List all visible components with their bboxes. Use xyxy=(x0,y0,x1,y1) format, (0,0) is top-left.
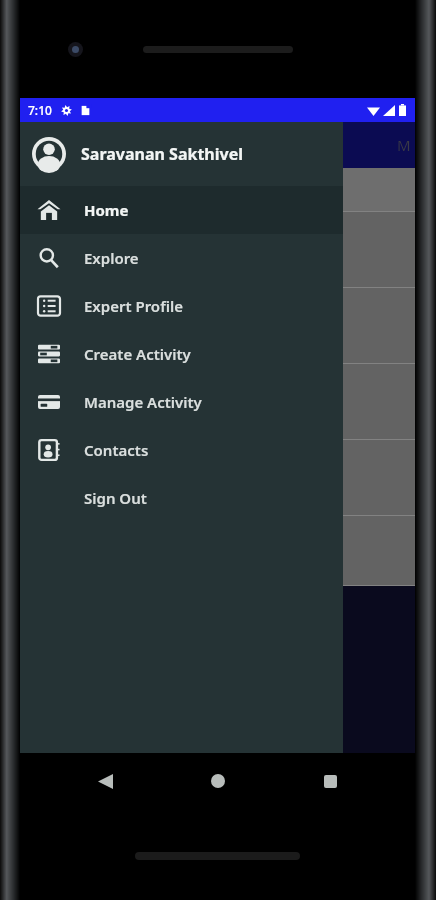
staticText: Create Activity xyxy=(84,344,191,364)
staticText: Expert Profile xyxy=(84,296,183,316)
button[interactable]: Home xyxy=(20,186,343,234)
staticText: Contacts xyxy=(84,440,149,460)
staticText: More Info… xyxy=(21,190,87,206)
button[interactable]: Sign Out xyxy=(20,474,343,522)
button[interactable]: Contacts xyxy=(20,426,343,474)
staticText: More Info… xyxy=(21,266,87,282)
button[interactable]: Back xyxy=(77,753,133,809)
button[interactable]: Create Activity xyxy=(20,330,343,378)
button[interactable]: Home xyxy=(190,753,246,809)
staticText: Sign Out xyxy=(84,488,147,508)
staticText: Explore xyxy=(84,248,139,268)
staticText: Manage Activity xyxy=(84,392,202,412)
button[interactable]: Explore xyxy=(20,234,343,282)
button[interactable]: Recent apps xyxy=(302,753,358,809)
button[interactable]: Saravanan Sakthivel xyxy=(20,122,343,186)
button[interactable]: Manage Activity xyxy=(20,378,343,426)
staticText: Saravanan Sakthivel xyxy=(81,143,243,165)
staticText: M xyxy=(397,135,411,155)
staticText: More Info… xyxy=(21,494,87,510)
staticText: More Info… xyxy=(21,342,87,358)
staticText: Home xyxy=(84,200,129,220)
staticText: CN) xyxy=(22,176,44,194)
staticText: ndation xyxy=(22,220,70,238)
staticText: 7:10 xyxy=(28,102,52,118)
button[interactable]: Expert Profile xyxy=(20,282,343,330)
